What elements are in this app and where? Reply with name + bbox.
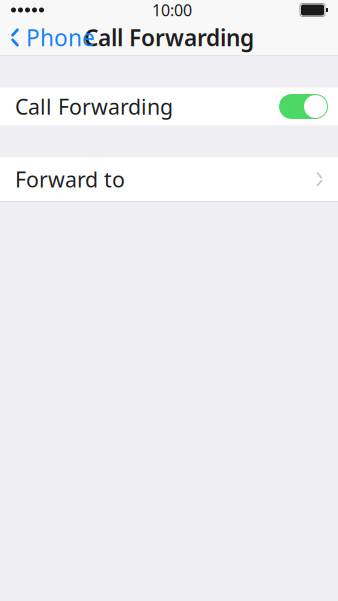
staticText: Call Forwarding [84, 22, 254, 52]
staticText: Phone [26, 22, 95, 52]
button[interactable]: Call Forwarding [279, 94, 328, 119]
staticText: 10:00 [152, 0, 192, 21]
staticText: Forward to [15, 165, 125, 193]
button[interactable]: Forward to [0, 157, 338, 201]
button[interactable]: Phone [0, 20, 105, 55]
staticText: Call Forwarding [15, 92, 173, 121]
